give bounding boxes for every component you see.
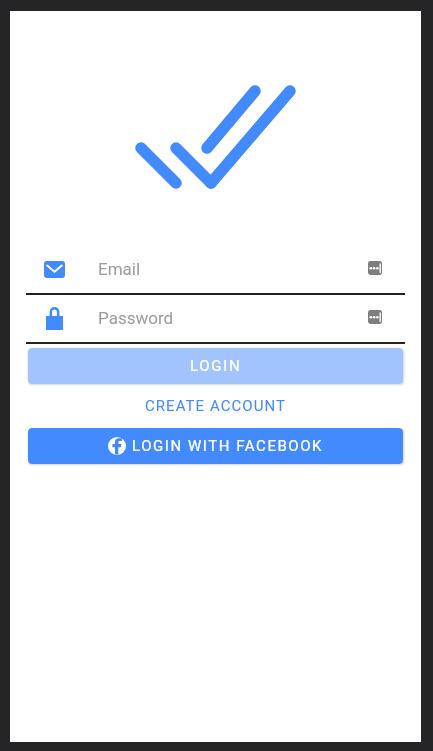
staticText: LOGIN — [190, 357, 242, 375]
other: Show password options — [368, 243, 433, 292]
button[interactable]: Password — [26, 295, 405, 344]
button[interactable]: CREATE ACCOUNT — [28, 390, 403, 421]
staticText: LOGIN WITH FACEBOOK — [132, 437, 324, 455]
staticText: CREATE ACCOUNT — [145, 397, 286, 415]
button[interactable]: LOGIN WITH FACEBOOK — [28, 428, 403, 464]
other: Show password options — [368, 292, 433, 341]
staticText: Password — [98, 308, 174, 328]
button[interactable]: LOGIN — [28, 348, 403, 384]
staticText: Email — [98, 259, 141, 279]
button[interactable]: Email — [26, 246, 405, 295]
